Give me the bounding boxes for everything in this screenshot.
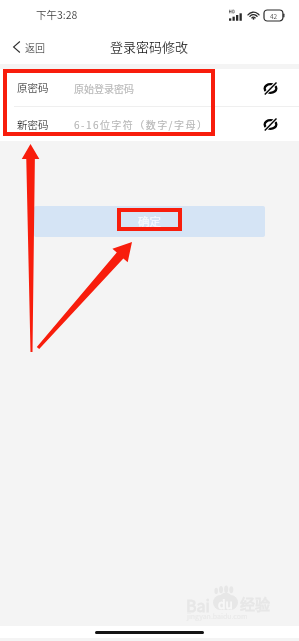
- button[interactable]: Show password: [259, 77, 281, 99]
- button[interactable]: Show password: [259, 113, 281, 135]
- staticText: 42: [270, 11, 278, 20]
- staticText: 新密码: [17, 117, 49, 132]
- staticText: 返回: [25, 40, 45, 54]
- staticText: 经验: [240, 593, 271, 615]
- staticText: 确定: [138, 213, 161, 230]
- staticText: Bai: [186, 593, 210, 616]
- staticText: 6-16位字符（数字/字母）: [74, 117, 259, 131]
- staticText: 原始登录密码: [74, 81, 259, 95]
- button[interactable]: 返回: [0, 34, 55, 60]
- staticText: 登录密码修改: [110, 37, 189, 56]
- button[interactable]: 新密码: [0, 107, 299, 141]
- staticText: 下午3:28: [36, 7, 78, 22]
- staticText: 原密码: [17, 80, 49, 95]
- button[interactable]: 原密码: [0, 69, 299, 106]
- button[interactable]: 确定: [34, 206, 265, 237]
- staticText: jingyan.baidu.com: [187, 611, 248, 621]
- staticText: du: [218, 595, 233, 610]
